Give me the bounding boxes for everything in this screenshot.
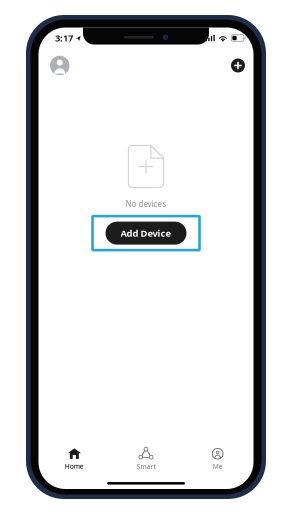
button[interactable]: Home [38,448,110,471]
button[interactable]: Add device [231,58,245,72]
button[interactable]: Profile [50,56,69,75]
button[interactable]: Me [182,448,253,470]
staticText: Add Device [120,227,171,239]
staticText: Smart [136,462,155,471]
staticText: No devices [125,198,166,209]
button[interactable]: Add Device [105,222,186,245]
button[interactable]: Smart [110,448,182,471]
staticText: Me [213,462,223,470]
staticText: 3:17 [55,32,73,44]
staticText: Home [65,461,84,471]
